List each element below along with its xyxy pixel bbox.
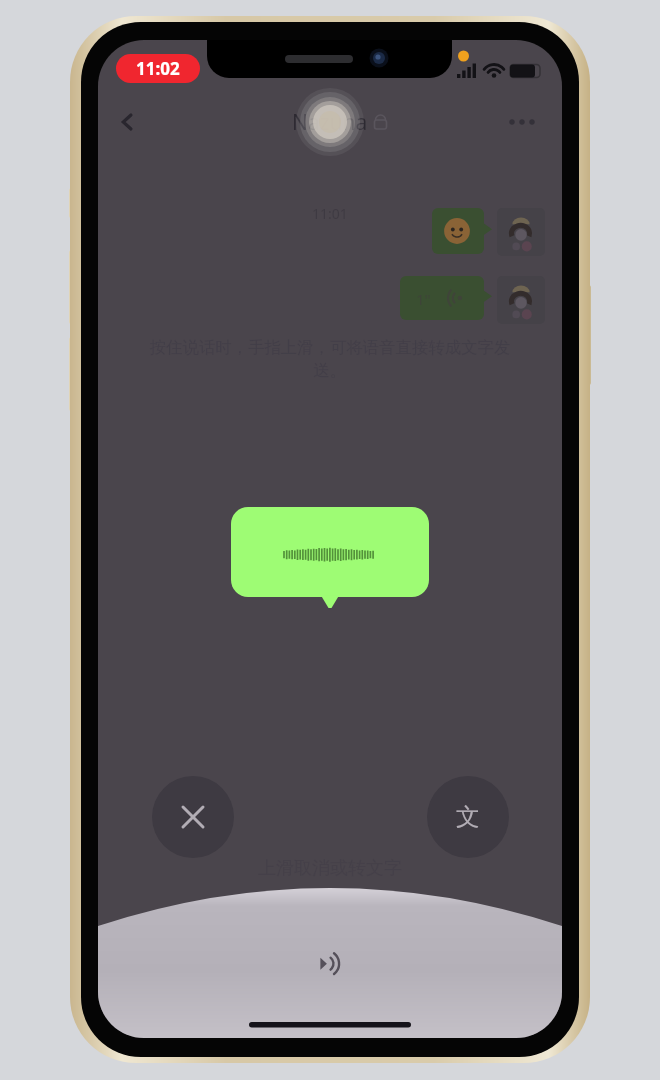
button[interactable]: Hold to talk: [98, 888, 562, 1038]
button[interactable]: Cancel recording: [152, 776, 234, 858]
staticText: Nazuna: [292, 108, 368, 137]
button[interactable]: Back: [107, 102, 147, 142]
button[interactable]: Convert to text: [427, 776, 509, 858]
staticText: 11:02: [136, 57, 180, 80]
staticText: 文: [456, 802, 480, 832]
button[interactable]: Nazuna: [255, 106, 405, 138]
button[interactable]: More options: [502, 102, 542, 142]
staticText: 11:01: [312, 204, 348, 223]
